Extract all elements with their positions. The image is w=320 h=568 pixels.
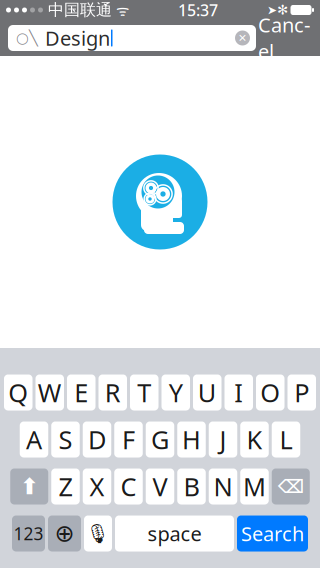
button[interactable]: Cancel [256,23,312,53]
staticText: Y [169,376,183,409]
staticText: W [38,376,62,409]
staticText: N [213,470,232,503]
staticText: C [120,470,136,503]
button[interactable]: Dictation [84,515,112,551]
staticText: ⬆ [20,474,39,499]
staticText: X [89,470,104,503]
button[interactable]: C [114,468,143,504]
staticText: J [219,423,226,456]
button[interactable]: M [240,468,269,504]
staticText: I [234,376,243,409]
button[interactable]: Next keyboard [48,515,81,551]
staticText: space [147,520,201,547]
staticText: 15:37 [178,0,218,21]
button[interactable]: W [35,374,64,410]
staticText: P [294,376,309,409]
staticText: 🎙 [86,523,110,544]
staticText: ○╲ [16,30,38,46]
button[interactable]: Y [161,374,190,410]
staticText: Cancel [258,11,310,64]
button[interactable]: Search [237,515,308,551]
button[interactable]: P [287,374,316,410]
staticText: Design [45,25,110,51]
staticText: 123 [13,522,43,545]
button[interactable]: L [272,421,300,457]
staticText: G [151,423,169,456]
staticText: ➤ [267,3,277,17]
staticText: L [279,423,292,456]
button[interactable]: H [177,421,206,457]
button[interactable]: K [240,421,269,457]
button[interactable]: D [83,421,111,457]
button[interactable]: E [67,374,95,410]
staticText: ⌫ [278,476,304,497]
staticText: R [105,376,121,409]
button[interactable]: F [114,421,143,457]
button[interactable]: Clear text [229,25,256,51]
button[interactable]: S [51,421,80,457]
staticText: H [182,423,201,456]
button[interactable]: G [146,421,174,457]
staticText: F [122,423,135,456]
staticText: O [260,376,280,409]
staticText: A [26,423,42,456]
button[interactable]: V [146,468,174,504]
staticText: B [183,470,199,503]
staticText: Search [241,520,304,547]
button[interactable]: 123 [12,515,45,551]
button[interactable]: N [209,468,237,504]
button[interactable]: T [130,374,158,410]
button[interactable]: U [193,374,221,410]
staticText: ᯤ [112,0,129,20]
button[interactable]: Shift [10,468,48,504]
staticText: 中国联通 [43,0,112,20]
button[interactable]: R [98,374,127,410]
button[interactable]: B [177,468,206,504]
button[interactable]: space [115,515,234,551]
staticText: K [246,423,262,456]
button[interactable]: Z [51,468,80,504]
staticText: E [74,376,88,409]
staticText: Q [8,376,28,409]
button[interactable]: A [20,421,48,457]
button[interactable]: X [83,468,111,504]
button[interactable]: J [209,421,237,457]
button[interactable]: O [256,374,284,410]
staticText: U [198,376,217,409]
staticText: ⊕ [54,520,74,547]
staticText: T [137,376,151,409]
staticText: Z [58,470,72,503]
staticText: ✕ [238,32,247,44]
button[interactable]: Q [4,374,32,410]
button[interactable]: I [224,374,253,410]
staticText: ✻ [277,2,288,17]
button[interactable]: Delete [272,468,310,504]
staticText: D [88,423,106,456]
staticText: S [58,423,72,456]
staticText: M [243,470,266,503]
staticText: V [152,470,167,503]
